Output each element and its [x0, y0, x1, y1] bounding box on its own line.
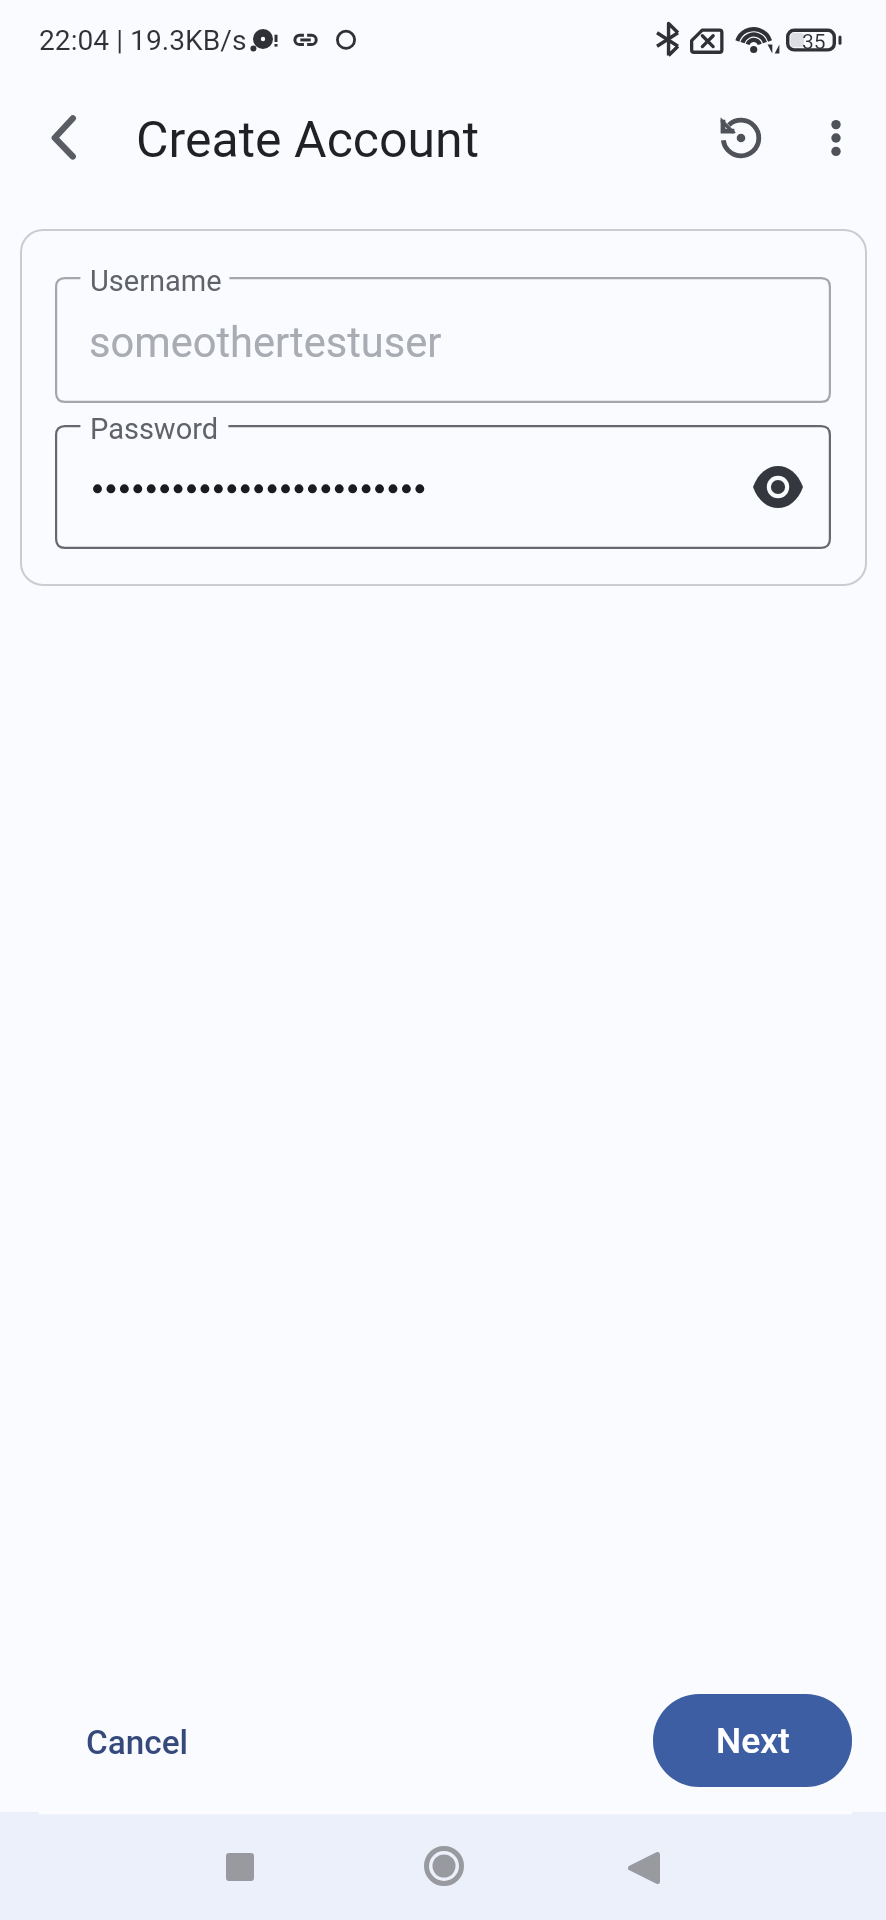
button[interactable]: Username — [55, 277, 831, 403]
staticText: Create Account — [136, 111, 480, 170]
staticText: 22:04 | 19.3KB/s — [39, 24, 247, 57]
button[interactable]: Home — [399, 1821, 489, 1911]
button[interactable]: Recent apps — [195, 1822, 285, 1912]
button[interactable]: Next — [653, 1694, 852, 1787]
staticText: Username — [90, 264, 222, 298]
button[interactable]: Password — [55, 425, 831, 549]
staticText: someothertestuser — [89, 318, 442, 367]
staticText: Cancel — [86, 1723, 189, 1762]
staticText: 35 — [802, 30, 826, 55]
button[interactable]: Show password — [741, 450, 815, 524]
button[interactable]: More options — [794, 96, 878, 180]
button[interactable]: Navigate up — [25, 88, 100, 163]
button[interactable]: Restore history — [699, 96, 783, 180]
button[interactable]: Back — [599, 1823, 689, 1913]
staticText: Password — [90, 412, 219, 446]
button[interactable]: Cancel — [56, 1705, 219, 1780]
staticText: Next — [716, 1720, 790, 1761]
